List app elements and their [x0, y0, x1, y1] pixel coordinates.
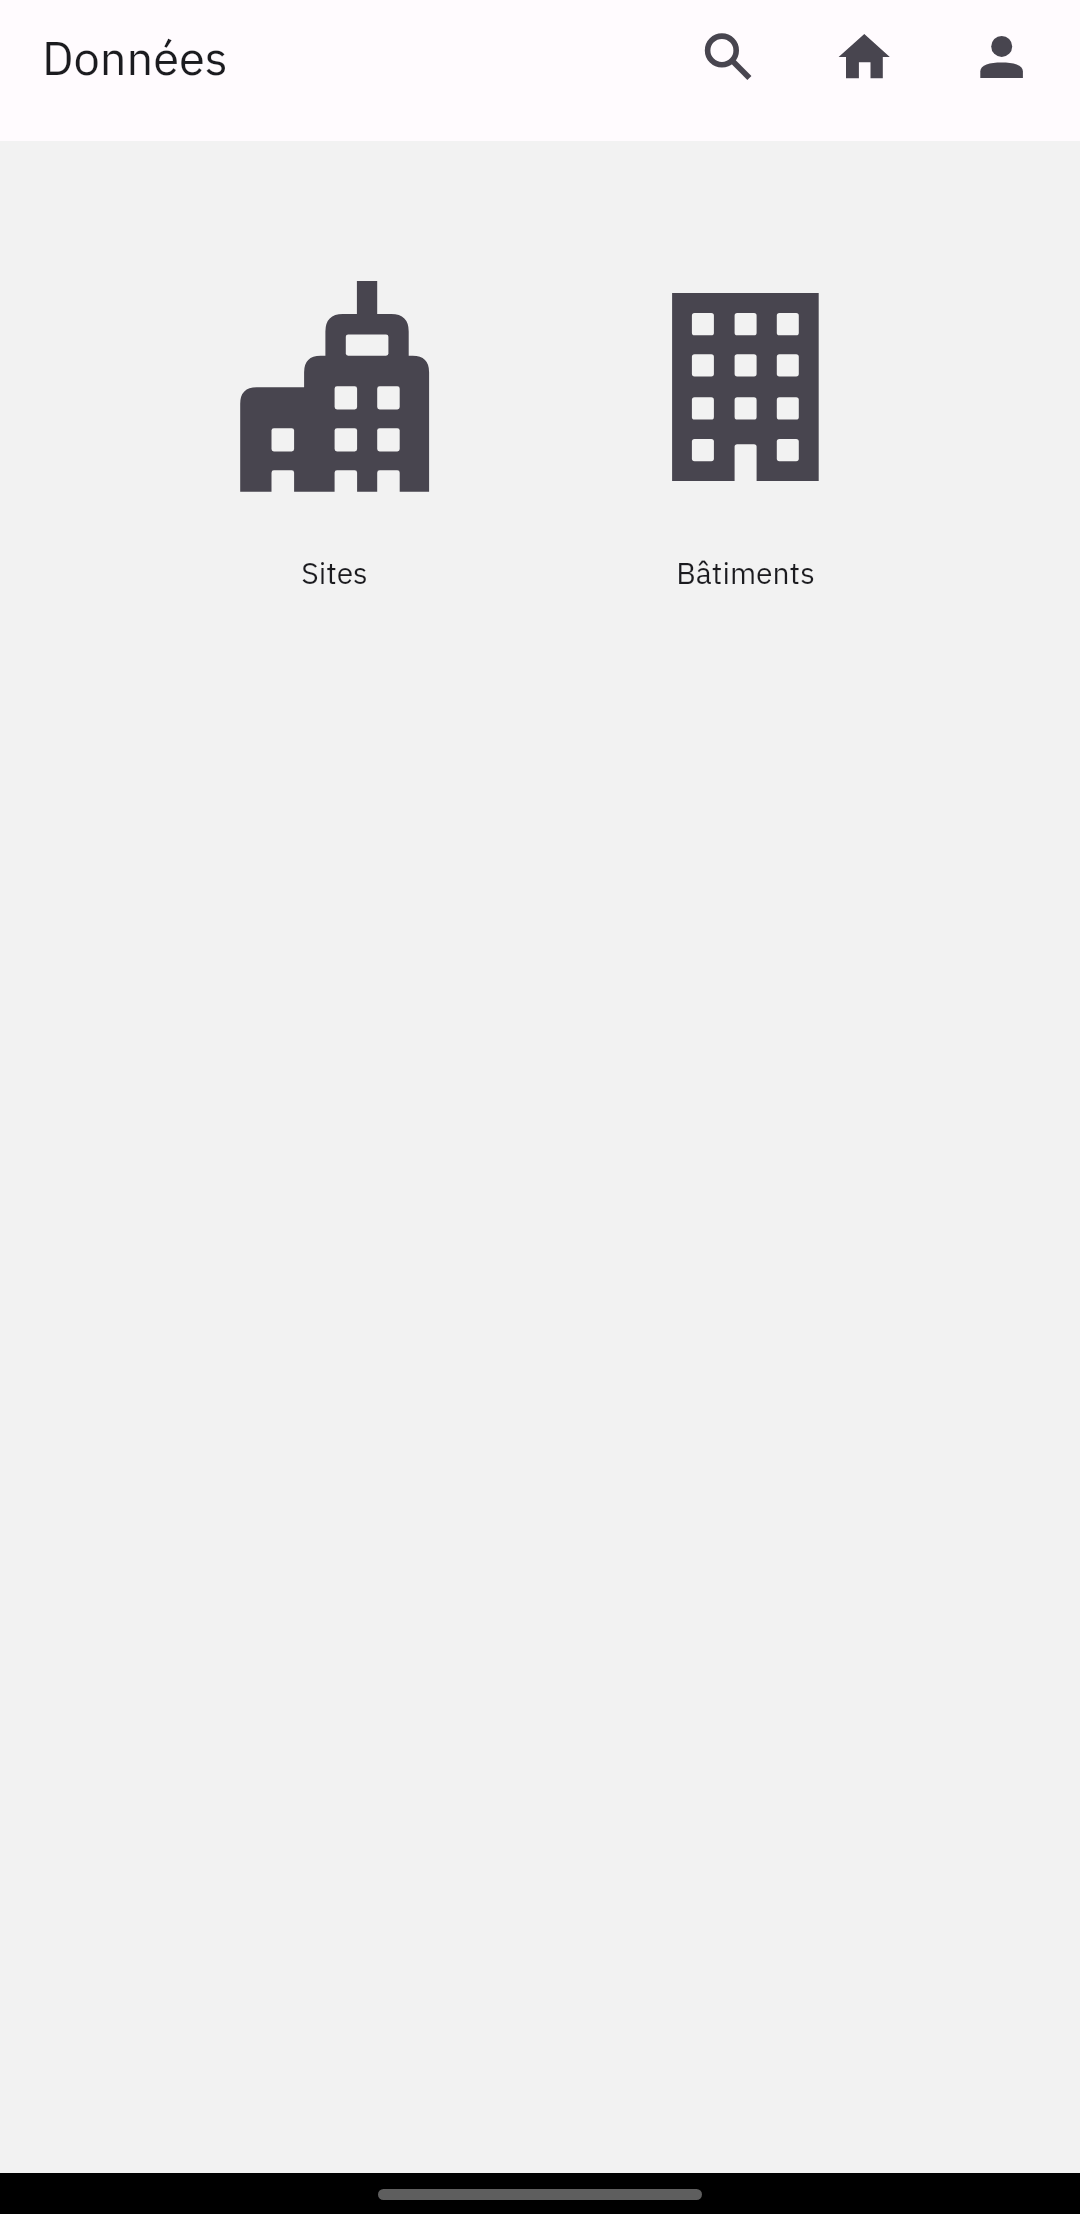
button[interactable]: Search: [667, 0, 787, 116]
staticText: Données: [42, 27, 228, 88]
staticText: Bâtiments: [676, 553, 815, 592]
button[interactable]: Bâtiments: [540, 141, 951, 616]
staticText: Sites: [301, 553, 368, 592]
button[interactable]: Home: [804, 0, 924, 116]
button[interactable]: Sites: [129, 141, 540, 616]
button[interactable]: Profile: [941, 0, 1061, 116]
